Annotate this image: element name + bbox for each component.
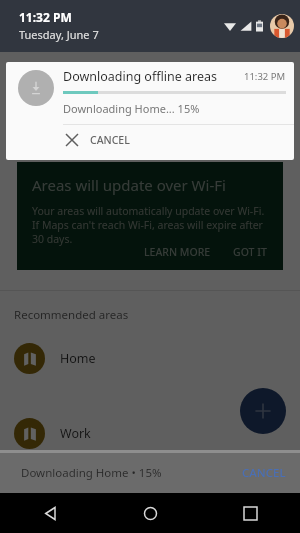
button[interactable]: CANCEL (228, 455, 300, 491)
staticText: Recommended areas (14, 307, 129, 323)
staticText: LEARN MORE (144, 245, 211, 259)
staticText: Tuesday, June 7 (19, 27, 99, 42)
button[interactable]: Add new area (240, 388, 286, 434)
button[interactable]: Home (100, 493, 200, 533)
button[interactable]: Account (270, 14, 294, 38)
button[interactable]: Home (0, 335, 300, 381)
staticText: Downloading offline areas (63, 68, 244, 85)
staticText: CANCEL (90, 133, 130, 147)
button[interactable]: CANCEL (6, 125, 294, 155)
staticText: Work (60, 425, 91, 442)
staticText: Areas will update over Wi-Fi (32, 175, 226, 195)
staticText: Downloading Home... 15% (63, 101, 200, 116)
staticText: Your areas will automatically update ove… (32, 204, 271, 246)
button[interactable]: Work (0, 410, 300, 456)
button[interactable]: Recent apps (200, 493, 300, 533)
staticText: 11:32 PM (244, 70, 286, 83)
button[interactable]: LEARN MORE (136, 241, 219, 263)
staticText: Home (60, 350, 96, 367)
staticText: CANCEL (242, 465, 286, 481)
button[interactable]: Areas will update over Wi-Fi (17, 162, 283, 270)
staticText: Downloading Home • 15% (21, 465, 228, 481)
button[interactable]: Downloading offline areas (6, 62, 294, 160)
staticText: 11:32 PM (19, 9, 72, 25)
button[interactable]: GOT IT (225, 241, 275, 263)
staticText: GOT IT (233, 245, 267, 259)
button[interactable]: Back (0, 493, 100, 533)
